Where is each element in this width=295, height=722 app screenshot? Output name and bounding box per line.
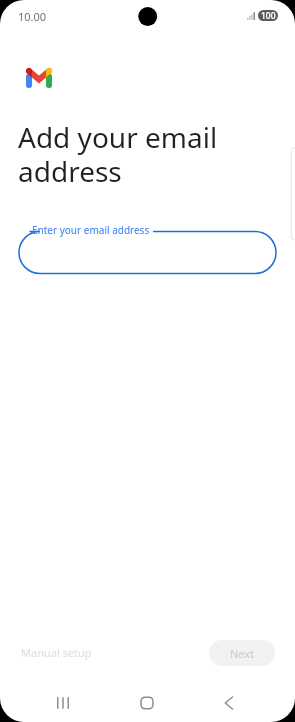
staticText: 100 xyxy=(261,10,276,21)
staticText: Enter your email address xyxy=(32,223,150,237)
other: Signal strength xyxy=(247,12,255,20)
button[interactable]: Manual setup xyxy=(13,639,100,666)
staticText: Add your email address xyxy=(18,118,218,191)
staticText: 10.00 xyxy=(18,9,47,24)
button[interactable]: Enter your email address xyxy=(19,222,276,276)
other: Gmail xyxy=(26,68,52,88)
staticText: Next xyxy=(230,646,255,661)
button[interactable]: Next xyxy=(209,640,275,666)
button[interactable]: Recent apps xyxy=(41,686,85,720)
button[interactable]: Back xyxy=(207,686,251,720)
button[interactable]: Home xyxy=(125,686,169,720)
staticText: Manual setup xyxy=(21,645,92,660)
